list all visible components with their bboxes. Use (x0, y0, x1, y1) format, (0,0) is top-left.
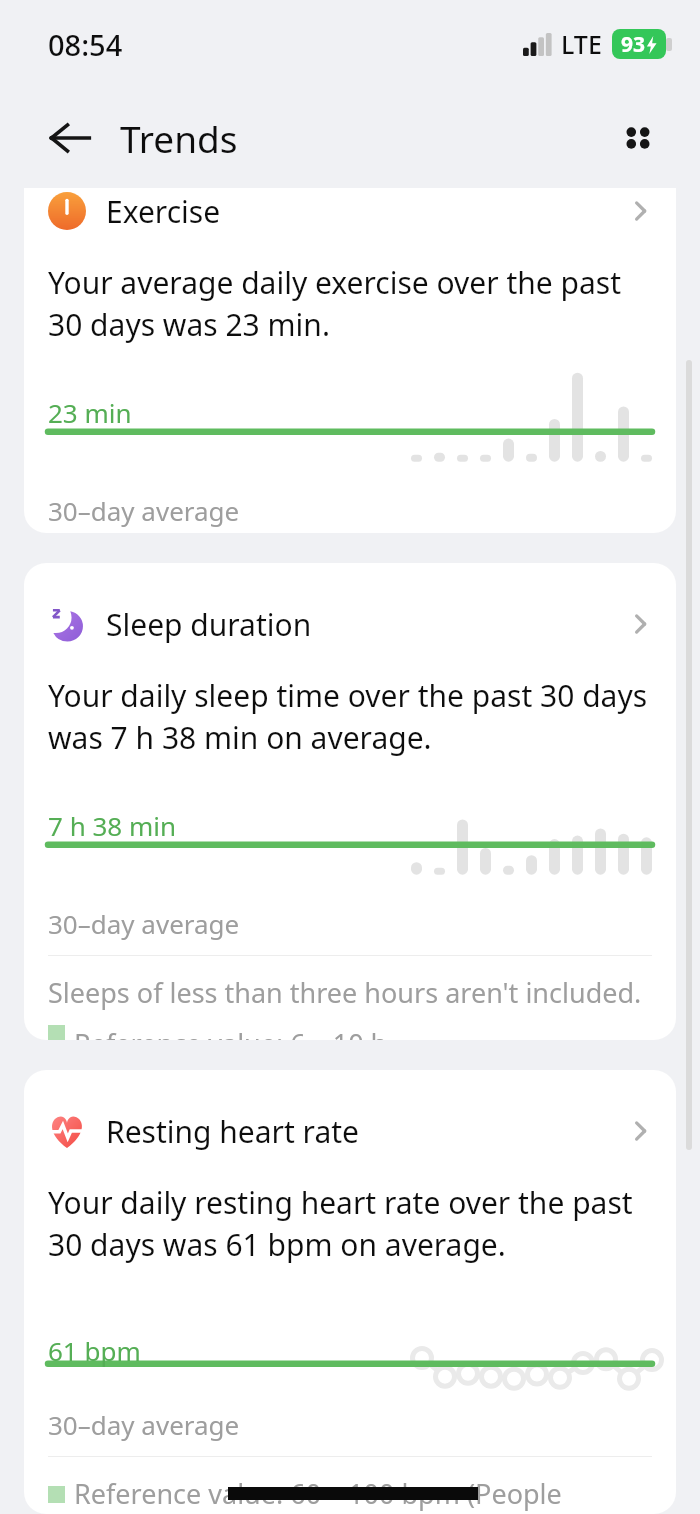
staticText: Your daily sleep time over the past 30 d… (48, 675, 652, 758)
staticText: Exercise (106, 191, 221, 232)
button[interactable]: Resting heart rate (24, 1070, 676, 1514)
staticText: Reference value: 6—10 h (74, 1025, 388, 1040)
staticText: 61 bpm (48, 1333, 141, 1368)
staticText: 08:54 (48, 25, 123, 64)
staticText: Your average daily exercise over the pas… (48, 262, 652, 345)
staticText: LTE (561, 27, 602, 61)
staticText: Your daily resting heart rate over the p… (48, 1182, 652, 1265)
staticText: 30–day average (48, 493, 240, 528)
button[interactable]: Back (34, 102, 106, 174)
staticText: 23 min (48, 395, 132, 430)
staticText: Resting heart rate (106, 1111, 359, 1152)
staticText: Sleep duration (106, 604, 312, 645)
staticText: Trends (120, 113, 238, 163)
staticText: 7 h 38 min (48, 808, 177, 843)
staticText: 30–day average (48, 906, 240, 941)
button[interactable]: More options (602, 102, 674, 174)
staticText: Reference value: 60—100 bpm (People who … (74, 1475, 566, 1514)
staticText: 93 (621, 30, 646, 59)
staticText: 30–day average (48, 1407, 240, 1442)
button[interactable]: Exercise (24, 188, 676, 533)
staticText: Sleeps of less than three hours aren't i… (48, 974, 642, 1011)
button[interactable]: Sleep duration (24, 563, 676, 1040)
